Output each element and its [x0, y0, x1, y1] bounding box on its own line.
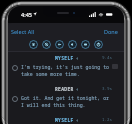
- button[interactable]: I'm trying, it's just going to: [8, 64, 124, 78]
- button[interactable]: Delete: [29, 40, 38, 49]
- staticText: I will end this thing.: [21, 102, 86, 109]
- button[interactable]: Volume: [68, 40, 77, 49]
- staticText: 9.4s: [102, 55, 113, 61]
- button[interactable]: Done: [102, 24, 124, 37]
- staticText: READER: [55, 86, 74, 92]
- staticText: 1.2s: [102, 117, 113, 123]
- button[interactable]: Mute: [42, 40, 51, 49]
- staticText: 3.9s: [102, 86, 113, 92]
- staticText: take some more time.: [21, 71, 80, 78]
- button[interactable]: Power: [94, 40, 103, 49]
- button[interactable]: Select All: [8, 24, 37, 37]
- button[interactable]: Archive: [81, 40, 90, 49]
- button[interactable]: Reply: [55, 40, 64, 49]
- button[interactable]: Got it. And get it tonight, or: [8, 95, 124, 109]
- staticText: I'm trying, it's just going to: [21, 64, 110, 71]
- staticText: Select All: [11, 28, 35, 35]
- staticText: Done: [104, 28, 118, 35]
- staticText: Got it. And get it tonight, or: [21, 95, 110, 102]
- staticText: 4:45: [21, 11, 32, 18]
- staticText: MYSELF: [55, 55, 74, 61]
- staticText: MYSELF: [55, 117, 74, 123]
